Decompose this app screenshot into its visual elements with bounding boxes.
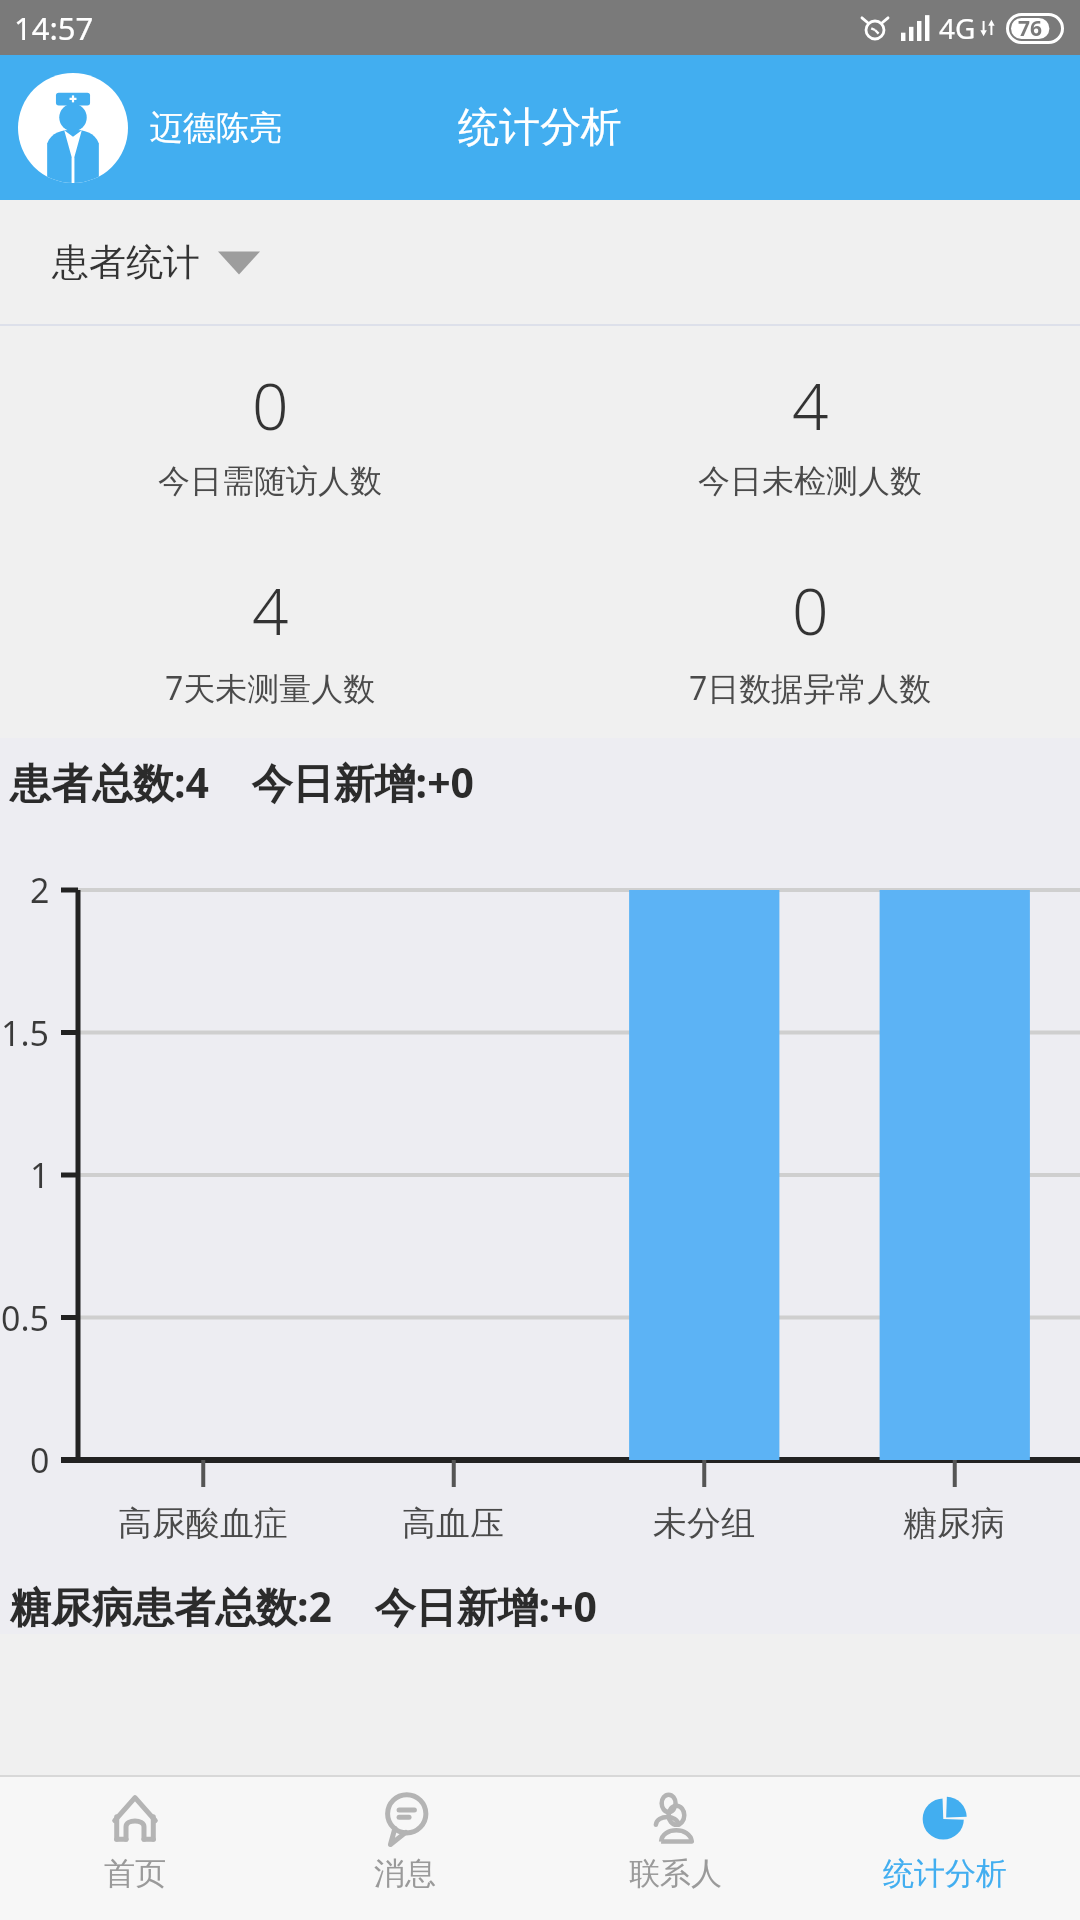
staticText: 0 xyxy=(792,567,829,654)
staticText: 未分组 xyxy=(653,1502,755,1545)
staticText: 联系人 xyxy=(629,1854,722,1893)
staticText: 今日未检测人数 xyxy=(698,461,922,501)
staticText: 高尿酸血症 xyxy=(118,1502,288,1545)
staticText: 统计分析 xyxy=(883,1854,1007,1893)
staticText: 糖尿病 xyxy=(903,1502,1005,1545)
staticText: 高血压 xyxy=(402,1502,504,1545)
staticText: 糖尿病患者总数:2 今日新增:+0 xyxy=(10,1578,598,1634)
staticText: 4 xyxy=(252,567,289,654)
staticText: 首页 xyxy=(104,1854,166,1893)
staticText: 4 xyxy=(792,362,829,449)
staticText: 4G xyxy=(939,9,976,47)
staticText: 0 xyxy=(30,1437,50,1483)
staticText: 统计分析 xyxy=(458,102,622,154)
staticText: 7天未测量人数 xyxy=(165,666,376,710)
button[interactable]: 0 xyxy=(0,362,540,501)
button[interactable]: 消息 xyxy=(270,1777,540,1920)
other: 首页 xyxy=(106,1790,164,1848)
staticText: 76 xyxy=(1018,14,1043,43)
button[interactable]: 4 xyxy=(540,362,1080,501)
staticText: 7日数据异常人数 xyxy=(689,666,932,710)
other: 联系人 xyxy=(646,1790,704,1848)
staticText: 消息 xyxy=(374,1854,436,1893)
button[interactable]: 统计分析 xyxy=(810,1777,1080,1920)
staticText: 患者总数:4 今日新增:+0 xyxy=(10,754,475,810)
button[interactable]: 联系人 xyxy=(540,1777,810,1920)
staticText: 0 xyxy=(252,362,289,449)
staticText: 0.5 xyxy=(1,1295,50,1341)
button[interactable]: 迈德陈亮 xyxy=(18,73,282,183)
button[interactable]: 4 xyxy=(0,567,540,710)
staticText: 1.5 xyxy=(1,1010,50,1056)
staticText: 2 xyxy=(30,867,50,913)
staticText: 1 xyxy=(30,1152,50,1198)
staticText: 迈德陈亮 xyxy=(150,107,282,149)
other: 消息 xyxy=(376,1790,434,1848)
button[interactable]: 首页 xyxy=(0,1777,270,1920)
other: 统计分析 xyxy=(916,1790,974,1848)
staticText: 患者统计 xyxy=(52,239,200,286)
button[interactable]: 0 xyxy=(540,567,1080,710)
staticText: 今日需随访人数 xyxy=(158,461,382,501)
button[interactable]: 患者统计 xyxy=(0,200,1080,324)
staticText: 14:57 xyxy=(14,7,94,49)
